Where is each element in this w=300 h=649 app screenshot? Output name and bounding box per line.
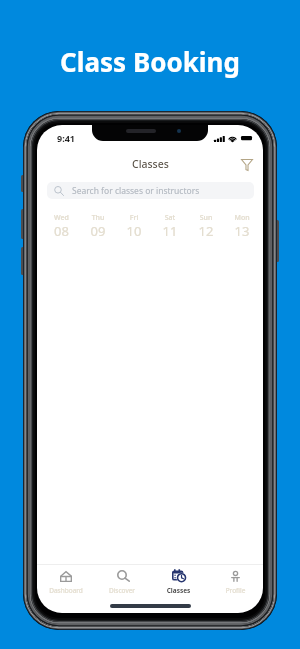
staticText: 08 [43,222,80,240]
button[interactable]: Wed [43,212,80,240]
staticText: 13 [224,222,260,240]
button[interactable]: Classes [150,565,207,598]
button[interactable]: Sat [152,212,188,240]
staticText: Mon [224,213,260,223]
button[interactable]: Mon [224,212,260,240]
staticText: Discover [94,586,150,595]
staticText: Dashboard [38,586,94,595]
staticText: Fri [116,213,152,223]
staticText: Class Booking [60,44,240,79]
staticText: 10 [116,222,152,240]
button[interactable]: Search for classes or instructors [47,182,254,199]
staticText: Sun [188,213,224,223]
staticText: 9:41 [57,132,75,144]
button[interactable]: Filter [235,153,259,177]
staticText: Thu [80,213,116,223]
staticText: Classes [150,586,207,595]
button[interactable]: Fri [116,212,152,240]
staticText: Classes [132,157,169,171]
button[interactable]: Sun [188,212,224,240]
staticText: Profile [207,586,263,595]
button[interactable]: Discover [94,565,150,598]
staticText: 12 [188,222,224,240]
staticText: Sat [152,213,188,223]
staticText: Wed [43,213,80,223]
staticText: 11 [152,222,188,240]
button[interactable]: Dashboard [38,565,94,598]
button[interactable]: Thu [80,212,116,240]
staticText: 09 [80,222,116,240]
button[interactable]: Profile [207,565,263,598]
staticText: Search for classes or instructors [72,185,200,197]
